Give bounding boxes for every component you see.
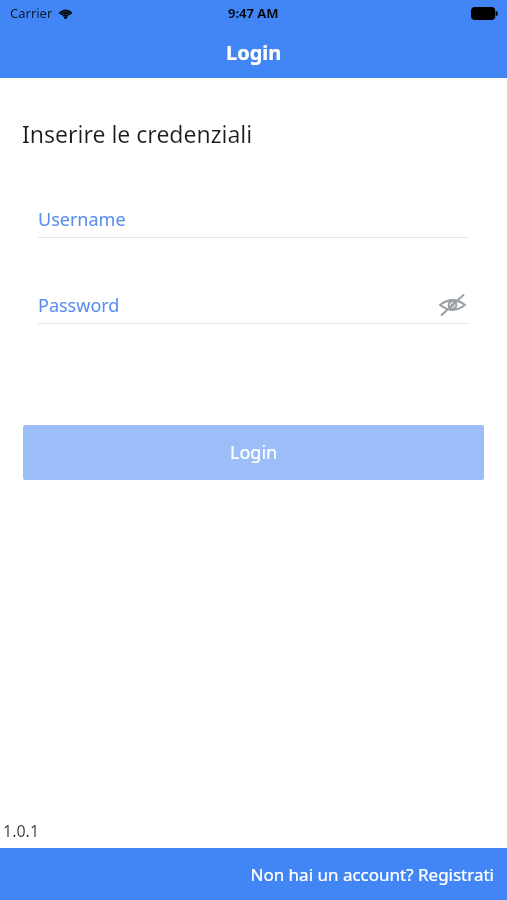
- staticText: Login: [230, 440, 278, 465]
- button[interactable]: Non hai un account? Registrati: [0, 848, 507, 900]
- button[interactable]: Username: [38, 201, 469, 238]
- staticText: Inserire le credenziali: [22, 118, 253, 149]
- button[interactable]: Password: [38, 287, 469, 324]
- staticText: Non hai un account? Registrati: [250, 863, 494, 886]
- staticText: Carrier: [10, 4, 53, 22]
- button[interactable]: Show password: [435, 288, 469, 322]
- staticText: Login: [226, 39, 282, 66]
- staticText: 1.0.1: [3, 820, 40, 842]
- staticText: 9:47 AM: [228, 4, 279, 22]
- button[interactable]: Login: [23, 425, 484, 480]
- staticText: Password: [38, 293, 120, 318]
- staticText: Username: [38, 207, 126, 232]
